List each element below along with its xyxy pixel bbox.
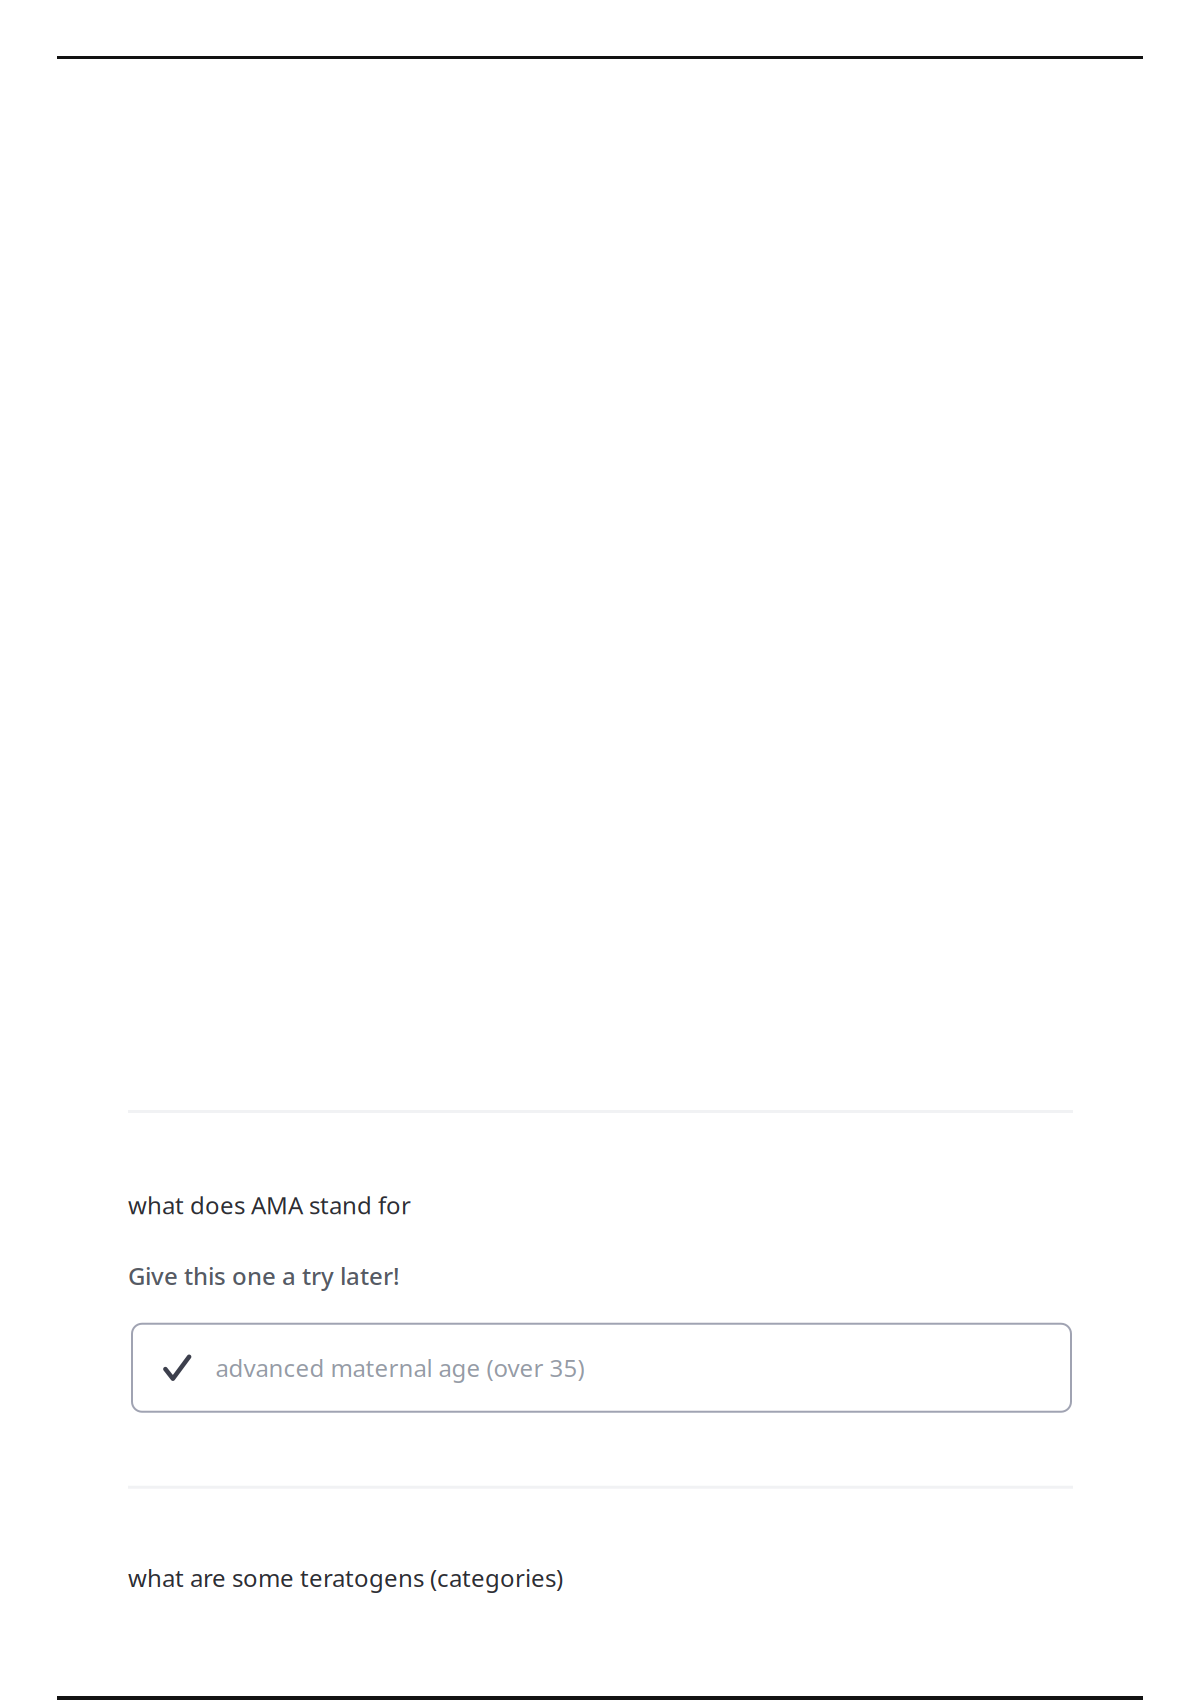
staticText: Give this one a try later! <box>128 1260 400 1292</box>
staticText: what does AMA stand for <box>128 1189 411 1221</box>
staticText: advanced maternal age (over 35) <box>215 1352 584 1384</box>
button[interactable]: advanced maternal age (over 35) <box>132 1324 1071 1412</box>
staticText: what are some teratogens (categories) <box>128 1562 563 1594</box>
